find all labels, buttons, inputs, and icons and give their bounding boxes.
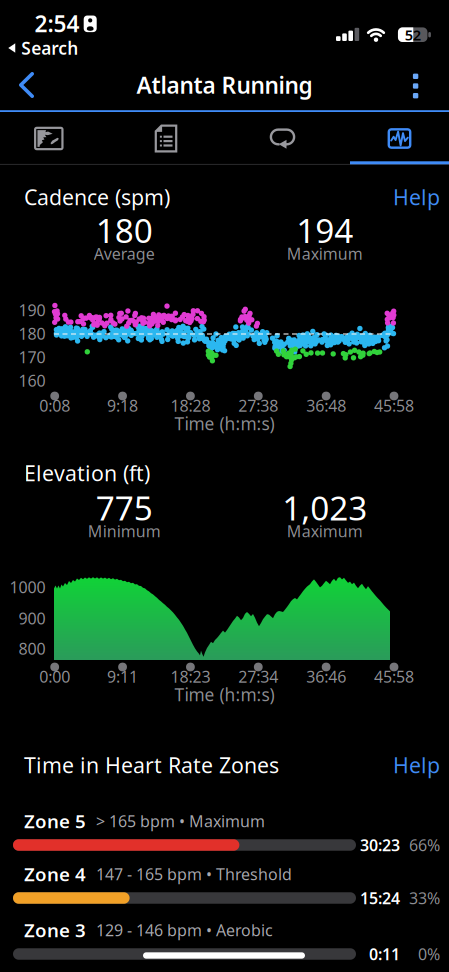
staticText: Atlanta Running xyxy=(136,70,312,100)
staticText: 0% xyxy=(418,943,440,965)
staticText: 129 - 146 bpm • Aerobic xyxy=(96,919,273,941)
staticText: 33% xyxy=(409,887,440,909)
staticText: 194 xyxy=(296,208,353,252)
staticText: 66% xyxy=(409,834,440,856)
staticText: 180 xyxy=(96,208,153,252)
button[interactable]: Details xyxy=(116,113,216,163)
button[interactable]: Map xyxy=(0,113,99,163)
staticText: 15:24 xyxy=(360,887,400,909)
staticText: 800 xyxy=(18,638,45,659)
staticText: 0:00 xyxy=(39,666,70,687)
staticText: Time in Heart Rate Zones xyxy=(24,751,279,779)
staticText: 45:58 xyxy=(374,666,414,687)
staticText: 9:18 xyxy=(107,395,138,416)
staticText: 190 xyxy=(18,299,45,321)
staticText: 775 xyxy=(96,485,153,530)
staticText: Elevation (ft) xyxy=(24,459,150,487)
staticText: 160 xyxy=(18,370,45,391)
staticText: Maximum xyxy=(287,243,363,264)
staticText: 1,023 xyxy=(282,485,367,530)
staticText: 180 xyxy=(18,323,45,344)
staticText: 18:23 xyxy=(170,666,210,687)
staticText: 30:23 xyxy=(360,834,400,856)
button[interactable]: Help xyxy=(393,751,440,779)
staticText: Search xyxy=(21,36,78,59)
staticText: 27:34 xyxy=(238,666,278,687)
staticText: Zone 4 xyxy=(24,862,86,886)
staticText: 0:08 xyxy=(39,395,70,416)
staticText: 9:11 xyxy=(107,666,138,687)
staticText: 1000 xyxy=(9,576,45,598)
button[interactable]: Help xyxy=(393,183,440,211)
staticText: Time (h:m:s) xyxy=(174,683,274,706)
button[interactable]: Charts xyxy=(349,113,449,163)
staticText: > 165 bpm • Maximum xyxy=(96,810,265,832)
staticText: 900 xyxy=(18,608,45,629)
staticText: 52 xyxy=(405,25,421,44)
button[interactable]: Back xyxy=(11,68,42,102)
staticText: 27:38 xyxy=(238,395,278,416)
staticText: Zone 5 xyxy=(24,809,86,833)
button[interactable]: Search xyxy=(8,36,78,59)
staticText: 45:58 xyxy=(374,395,414,416)
staticText: Zone 3 xyxy=(24,918,86,942)
staticText: 0:11 xyxy=(369,943,400,965)
staticText: 36:46 xyxy=(306,666,346,687)
staticText: 36:48 xyxy=(306,395,346,416)
staticText: Cadence (spm) xyxy=(24,183,170,211)
staticText: Time (h:m:s) xyxy=(174,412,274,435)
staticText: 170 xyxy=(18,346,45,368)
button[interactable]: Laps xyxy=(232,113,332,163)
staticText: Maximum xyxy=(287,520,363,542)
staticText: Help xyxy=(393,183,440,211)
staticText: 2:54 xyxy=(34,8,79,38)
staticText: Help xyxy=(393,751,440,779)
staticText: 18:28 xyxy=(170,395,210,416)
staticText: Minimum xyxy=(88,520,161,542)
staticText: 147 - 165 bpm • Threshold xyxy=(96,863,292,885)
staticText: Average xyxy=(94,243,155,264)
button[interactable]: More options xyxy=(403,71,428,101)
